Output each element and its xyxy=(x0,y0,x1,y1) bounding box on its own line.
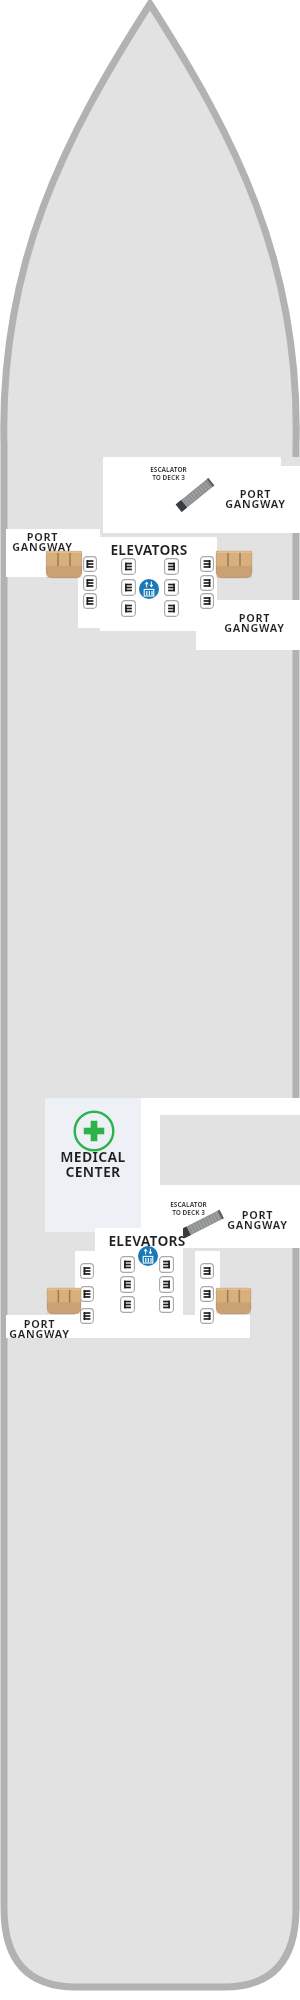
button[interactable] xyxy=(200,1286,214,1302)
button[interactable] xyxy=(159,1296,174,1313)
staticText: PORT GANGWAY xyxy=(227,1207,288,1233)
button[interactable] xyxy=(83,556,97,572)
button[interactable] xyxy=(121,558,136,575)
staticText: ESCALATOR TO DECK 3 xyxy=(170,1200,207,1217)
staticText: PORT GANGWAY xyxy=(225,486,286,512)
button[interactable] xyxy=(200,593,214,609)
button[interactable] xyxy=(121,600,136,617)
staticText: PORT GANGWAY xyxy=(12,529,73,555)
button[interactable] xyxy=(200,1263,214,1279)
button[interactable] xyxy=(216,551,252,578)
button[interactable] xyxy=(80,1286,94,1302)
staticText: PORT GANGWAY xyxy=(9,1316,70,1342)
staticText: ELEVATORS xyxy=(108,1231,186,1249)
button[interactable] xyxy=(159,1256,174,1273)
button[interactable] xyxy=(46,551,82,578)
button[interactable] xyxy=(120,1256,135,1273)
button[interactable] xyxy=(47,1288,81,1314)
button[interactable] xyxy=(216,1288,251,1314)
button[interactable] xyxy=(120,1296,135,1313)
button[interactable] xyxy=(83,593,97,609)
button[interactable] xyxy=(80,1263,94,1279)
button[interactable] xyxy=(80,1308,94,1324)
button[interactable] xyxy=(121,579,136,596)
button[interactable] xyxy=(120,1276,135,1293)
button[interactable] xyxy=(200,1308,214,1324)
staticText: ELEVATORS xyxy=(110,540,188,558)
button[interactable] xyxy=(139,579,159,599)
staticText: ESCALATOR TO DECK 3 xyxy=(150,465,187,482)
button[interactable] xyxy=(164,600,179,617)
staticText: MEDICAL CENTER xyxy=(60,1147,126,1181)
button[interactable] xyxy=(74,1111,114,1151)
button[interactable] xyxy=(164,579,179,596)
staticText: PORT GANGWAY xyxy=(224,610,285,636)
button[interactable] xyxy=(164,558,179,575)
button[interactable] xyxy=(159,1276,174,1293)
button[interactable] xyxy=(200,575,214,591)
button[interactable] xyxy=(200,556,214,572)
button[interactable] xyxy=(83,575,97,591)
button[interactable] xyxy=(138,1246,158,1266)
